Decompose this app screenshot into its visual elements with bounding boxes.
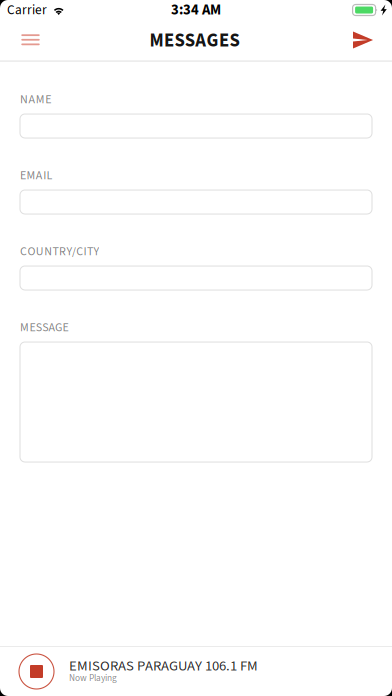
staticText: MESSAGES	[150, 27, 239, 54]
button[interactable]: Send	[341, 19, 385, 60]
staticText: NAME	[20, 91, 51, 108]
staticText: MESSAGE	[20, 319, 68, 336]
staticText: 3:34 AM	[171, 0, 221, 20]
staticText: COUNTRY/CITY	[20, 243, 99, 260]
staticText: EMAIL	[20, 167, 53, 184]
staticText: EMISORAS PARAGUAY 106.1 FM	[69, 656, 258, 676]
button[interactable]: Stop	[0, 647, 69, 696]
staticText: Carrier	[7, 0, 47, 19]
button[interactable]: Menu	[8, 19, 52, 60]
staticText: Now Playing	[69, 671, 117, 685]
